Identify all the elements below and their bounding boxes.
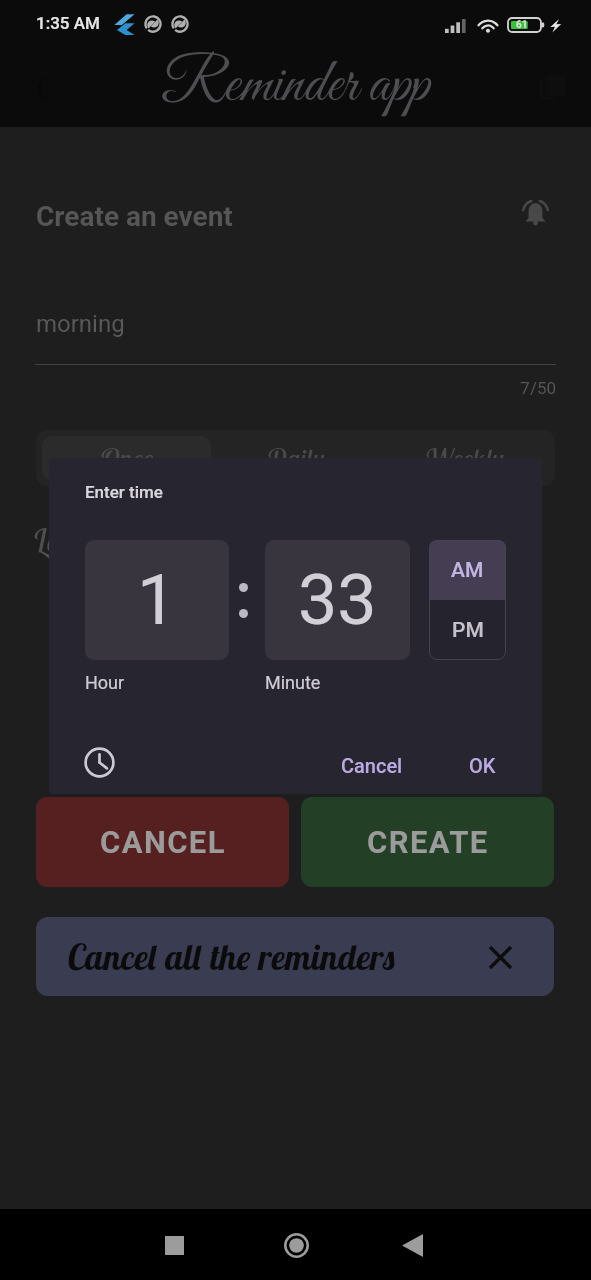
button[interactable]: Dismiss bbox=[482, 939, 518, 975]
staticText: 7/50 bbox=[500, 378, 556, 398]
button[interactable]: CANCEL bbox=[36, 797, 289, 887]
staticText: Cancel bbox=[341, 754, 403, 777]
button[interactable]: Back bbox=[388, 1221, 436, 1269]
button[interactable]: Weekly bbox=[380, 436, 549, 480]
staticText: morning bbox=[36, 310, 125, 338]
staticText: CANCEL bbox=[100, 824, 226, 860]
button[interactable]: AM bbox=[429, 540, 506, 600]
staticText: Enter time bbox=[85, 482, 163, 502]
button[interactable]: Notifications bbox=[513, 191, 557, 235]
staticText: 61 bbox=[516, 19, 528, 31]
staticText: Weekly bbox=[425, 441, 504, 476]
staticText: 1:35 AM bbox=[36, 13, 100, 33]
staticText: Reminder app bbox=[161, 48, 430, 124]
staticText: OK bbox=[469, 754, 496, 777]
button[interactable]: Cancel all the reminders bbox=[36, 917, 554, 996]
button[interactable]: OK bbox=[455, 746, 510, 785]
staticText: AM bbox=[451, 558, 484, 583]
button[interactable]: CREATE bbox=[301, 797, 554, 887]
button[interactable]: 33 bbox=[265, 540, 410, 660]
staticText: PM bbox=[452, 618, 484, 643]
button[interactable]: PM bbox=[429, 600, 506, 660]
staticText: Once bbox=[100, 441, 154, 476]
staticText: 1 bbox=[137, 559, 177, 641]
button[interactable]: Daily bbox=[211, 436, 380, 480]
staticText: Hour bbox=[85, 672, 125, 693]
button[interactable]: 1 bbox=[85, 540, 229, 660]
button[interactable]: Cancel bbox=[327, 746, 417, 785]
button[interactable]: Once bbox=[42, 436, 211, 480]
staticText: Create an event bbox=[36, 200, 233, 233]
staticText: Left 1 minute bbox=[33, 521, 173, 560]
staticText: CREATE bbox=[367, 824, 489, 860]
button[interactable]: Switch to clock mode bbox=[76, 739, 122, 785]
staticText: Minute bbox=[265, 672, 321, 693]
staticText: Daily bbox=[267, 441, 325, 476]
button[interactable]: Home bbox=[272, 1221, 320, 1269]
staticText: 33 bbox=[298, 559, 377, 641]
button[interactable]: Recents bbox=[150, 1221, 198, 1269]
staticText: Cancel all the reminders bbox=[67, 935, 397, 979]
